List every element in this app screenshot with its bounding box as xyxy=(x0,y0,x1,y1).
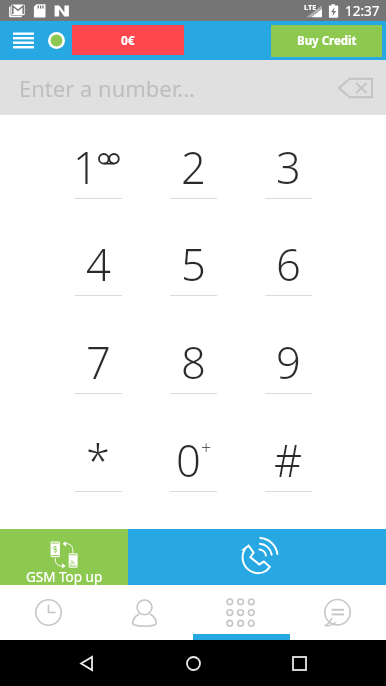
staticText: Enter a number... xyxy=(19,73,196,103)
button[interactable]: 7 xyxy=(50,310,146,408)
button[interactable]: * xyxy=(50,408,146,506)
button[interactable]: Contacts xyxy=(96,585,192,640)
staticText: Buy Credit xyxy=(297,33,357,49)
button[interactable]: Home xyxy=(174,644,212,682)
button[interactable]: Back xyxy=(68,644,106,682)
button[interactable]: Backspace xyxy=(332,65,378,111)
button[interactable]: 9 xyxy=(241,310,336,408)
button[interactable]: # xyxy=(241,408,336,506)
button[interactable]: 8 xyxy=(146,310,241,408)
staticText: 6 xyxy=(276,234,301,293)
staticText: 1 xyxy=(73,137,98,196)
button[interactable]: Buy Credit xyxy=(271,25,382,57)
button[interactable]: 5 xyxy=(146,212,241,310)
staticText: 0 xyxy=(176,430,201,489)
button[interactable]: Messages xyxy=(289,585,386,640)
button[interactable]: Recents xyxy=(0,585,96,640)
staticText: 0€ xyxy=(121,32,135,48)
staticText: 8 xyxy=(181,332,206,391)
staticText: LTE xyxy=(304,2,317,12)
button[interactable]: Call xyxy=(128,529,386,585)
button[interactable]: 6 xyxy=(241,212,336,310)
button[interactable]: 4 xyxy=(50,212,146,310)
button[interactable]: 2 xyxy=(146,115,241,212)
button[interactable]: Dialpad xyxy=(192,585,289,640)
button[interactable]: 1 xyxy=(50,115,146,212)
button[interactable]: 0€ xyxy=(72,25,184,55)
button[interactable]: Recent apps xyxy=(280,644,318,682)
staticText: 4 xyxy=(86,234,111,293)
button[interactable]: 3 xyxy=(241,115,336,212)
staticText: 9 xyxy=(276,332,301,391)
staticText: 3 xyxy=(276,137,301,196)
button[interactable]: GSM Top up xyxy=(0,529,128,585)
staticText: * xyxy=(86,430,110,489)
button[interactable]: Menu xyxy=(0,21,46,60)
staticText: + xyxy=(201,435,212,460)
staticText: # xyxy=(274,430,303,489)
staticText: 2 xyxy=(181,137,206,196)
staticText: 5 xyxy=(181,234,206,293)
staticText: 12:37 xyxy=(345,2,380,20)
staticText: 7 xyxy=(86,332,111,391)
button[interactable]: 0 xyxy=(146,408,241,506)
staticText: GSM Top up xyxy=(26,568,103,586)
